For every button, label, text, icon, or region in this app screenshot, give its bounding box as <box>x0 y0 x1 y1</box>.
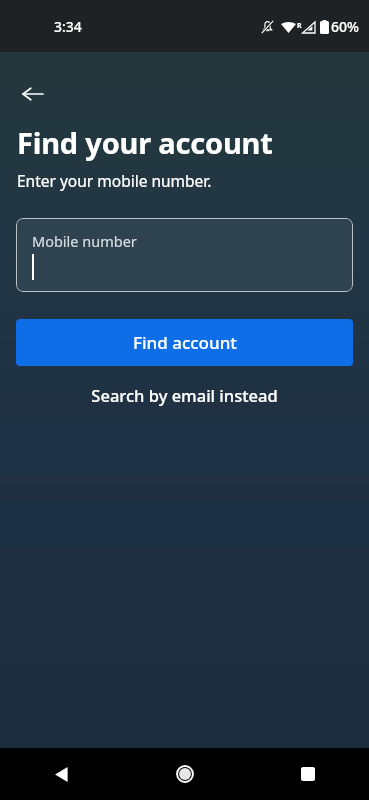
staticText: 60% <box>331 17 359 36</box>
staticText: Find account <box>133 331 237 354</box>
button[interactable]: Back <box>10 72 54 116</box>
button[interactable]: Mobile number <box>16 218 353 292</box>
button[interactable]: Find account <box>16 319 353 366</box>
button[interactable]: Recent apps <box>246 748 369 800</box>
button[interactable]: Search by email instead <box>0 378 369 412</box>
staticText: R <box>297 21 302 31</box>
button[interactable]: Home <box>123 748 246 800</box>
staticText: Enter your mobile number. <box>17 170 212 191</box>
staticText: 3:34 <box>54 17 82 36</box>
staticText: Mobile number <box>32 231 137 251</box>
staticText: Find your account <box>17 123 273 162</box>
staticText: Search by email instead <box>91 384 278 406</box>
button[interactable]: Back <box>0 748 123 800</box>
